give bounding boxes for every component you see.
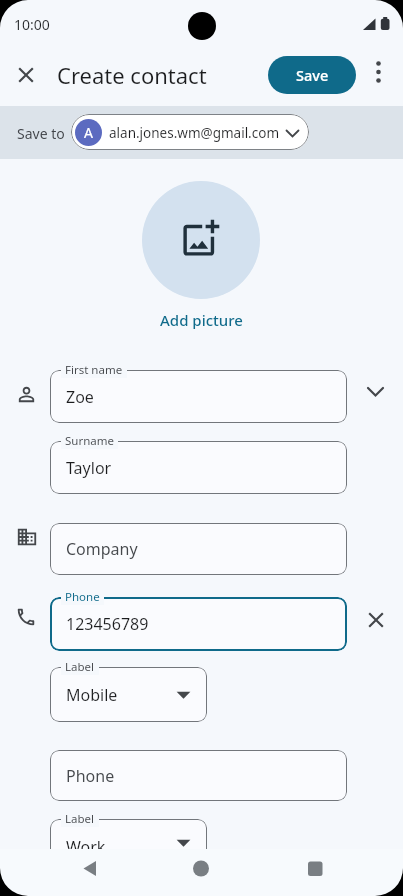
staticText: Phone — [65, 589, 100, 605]
button[interactable] — [12, 61, 42, 91]
staticText: Company — [66, 538, 138, 560]
button[interactable]: 123456789 — [50, 597, 347, 651]
staticText: Zoe — [66, 386, 94, 408]
staticText: Surname — [65, 433, 114, 449]
button[interactable] — [181, 850, 221, 896]
staticText: Label — [65, 811, 95, 827]
button[interactable]: Zoe — [50, 370, 347, 423]
staticText: 123456789 — [66, 613, 149, 635]
staticText: First name — [65, 362, 123, 378]
button[interactable] — [366, 58, 392, 92]
button[interactable]: Mobile — [50, 667, 207, 722]
button[interactable]: Taylor — [50, 441, 347, 494]
button[interactable] — [70, 850, 110, 896]
button[interactable]: Phone — [50, 750, 347, 801]
button[interactable] — [0, 0, 26, 26]
staticText: Work — [66, 836, 106, 858]
button[interactable]: A — [71, 114, 309, 150]
button[interactable]: Work — [50, 819, 207, 874]
staticText: A — [84, 123, 93, 142]
staticText: Mobile — [66, 684, 118, 706]
staticText: Save to — [17, 124, 65, 143]
staticText: alan.jones.wm@gmail.com — [109, 124, 280, 142]
button[interactable] — [295, 850, 335, 896]
button[interactable]: Save — [268, 56, 356, 94]
staticText: Phone — [66, 765, 115, 787]
staticText: Save — [296, 65, 329, 85]
button[interactable] — [142, 181, 260, 299]
staticText: 10:00 — [14, 15, 50, 34]
staticText: Taylor — [66, 457, 112, 479]
staticText: Create contact — [57, 60, 207, 90]
staticText: Add picture — [160, 310, 243, 330]
staticText: Label — [65, 659, 95, 675]
button[interactable]: Add picture — [0, 310, 403, 330]
button[interactable] — [360, 378, 392, 406]
button[interactable]: Company — [50, 523, 347, 575]
